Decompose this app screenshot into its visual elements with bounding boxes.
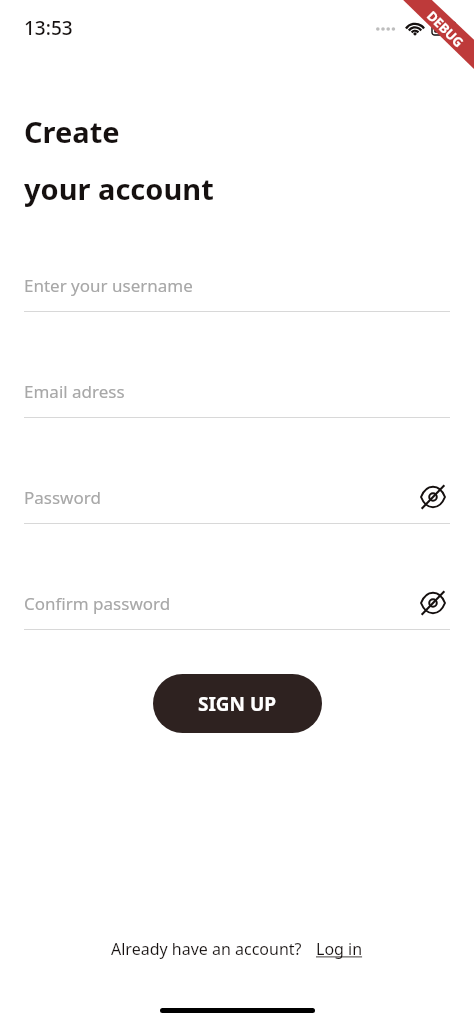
- button[interactable]: Confirm password: [0, 581, 474, 630]
- button[interactable]: SIGN UP: [153, 674, 322, 733]
- staticText: your account: [24, 169, 214, 208]
- button[interactable]: Toggle password visibility: [416, 586, 450, 620]
- staticText: 13:53: [24, 15, 73, 41]
- button[interactable]: Log in: [316, 938, 363, 960]
- button[interactable]: Toggle password visibility: [416, 480, 450, 514]
- staticText: Already have an account?: [111, 938, 302, 960]
- staticText: Email adress: [24, 380, 125, 403]
- button[interactable]: Email adress: [0, 369, 474, 418]
- staticText: Password: [24, 486, 101, 509]
- staticText: DEBUG: [423, 7, 468, 51]
- staticText: Enter your username: [24, 274, 193, 297]
- staticText: Create: [24, 112, 120, 151]
- staticText: Log in: [316, 938, 363, 960]
- staticText: Confirm password: [24, 592, 171, 615]
- button[interactable]: Enter your username: [0, 263, 474, 312]
- button[interactable]: Password: [0, 475, 474, 524]
- staticText: SIGN UP: [198, 691, 277, 717]
